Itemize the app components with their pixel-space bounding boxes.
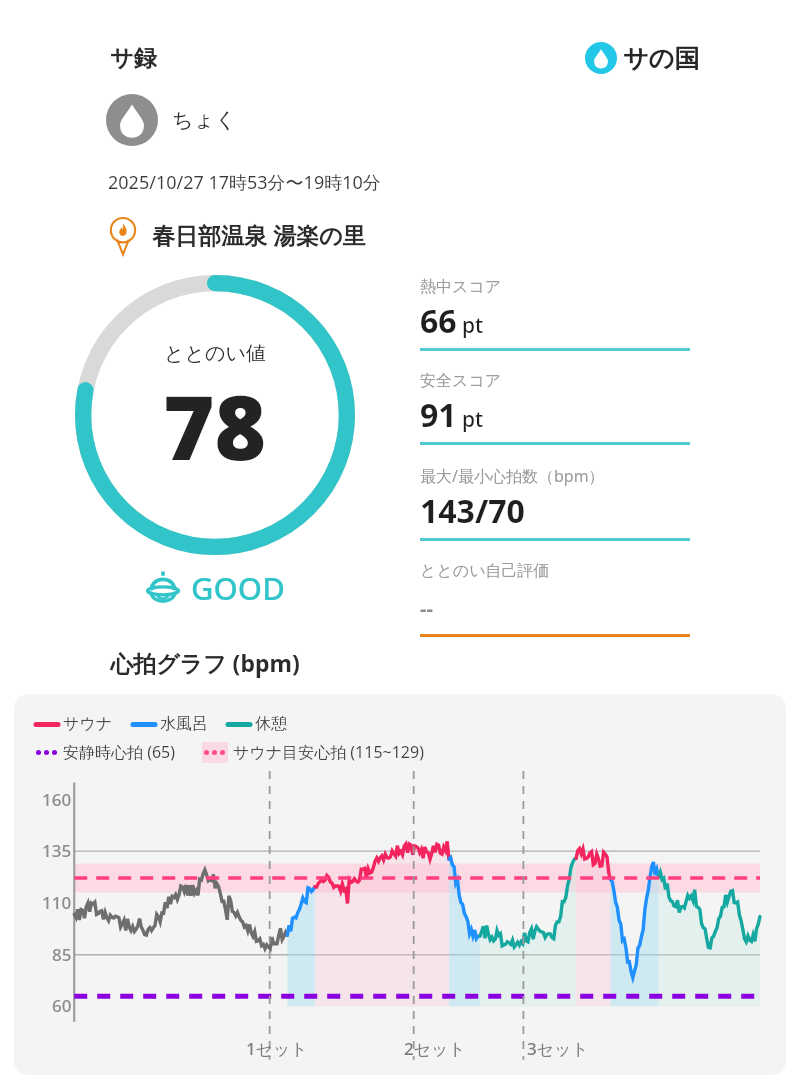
staticText: 78	[163, 366, 267, 486]
staticText: 3セット	[527, 1037, 589, 1060]
button[interactable]: 春日部温泉 湯楽の里	[104, 215, 366, 253]
staticText: 休憩	[255, 714, 287, 734]
staticText: 91	[420, 393, 457, 437]
staticText: 2025/10/27 17時53分〜19時10分	[108, 170, 381, 195]
staticText: 66	[420, 299, 457, 343]
staticText: 143/70	[420, 489, 525, 533]
staticText: サの国	[623, 43, 700, 74]
staticText: 熱中スコア	[420, 277, 502, 297]
staticText: GOOD	[191, 567, 285, 609]
staticText: 春日部温泉 湯楽の里	[152, 219, 366, 250]
staticText: 2セット	[404, 1037, 466, 1060]
button[interactable]: 最大/最小心拍数（bpm）	[420, 465, 690, 561]
button[interactable]: ととのい自己評価	[420, 561, 690, 645]
staticText: サウナ目安心拍 (115~129)	[233, 741, 424, 763]
staticText: 135	[42, 839, 72, 862]
staticText: 安全スコア	[420, 371, 502, 391]
staticText: 110	[42, 891, 72, 914]
staticText: ととのい値	[164, 341, 266, 366]
staticText: サウナ	[63, 714, 113, 734]
button[interactable]: 安全スコア	[420, 371, 690, 465]
staticText: 心拍グラフ (bpm)	[110, 647, 300, 678]
button[interactable]: ちょく	[106, 94, 237, 146]
staticText: 60	[52, 994, 72, 1017]
button[interactable]: 熱中スコア	[420, 277, 690, 371]
button[interactable]: サの国 home	[585, 42, 700, 74]
staticText: 安静時心拍 (65)	[63, 741, 176, 763]
staticText: サ録	[110, 44, 157, 73]
staticText: 85	[52, 943, 72, 966]
staticText: 160	[42, 788, 72, 811]
staticText: pt	[462, 311, 484, 340]
staticText: ととのい自己評価	[420, 561, 550, 581]
staticText: pt	[462, 405, 484, 434]
staticText: --	[420, 595, 433, 622]
staticText: 水風呂	[160, 714, 208, 734]
staticText: ちょく	[172, 107, 237, 133]
staticText: 1セット	[246, 1037, 308, 1060]
staticText: 最大/最小心拍数（bpm）	[420, 465, 605, 487]
